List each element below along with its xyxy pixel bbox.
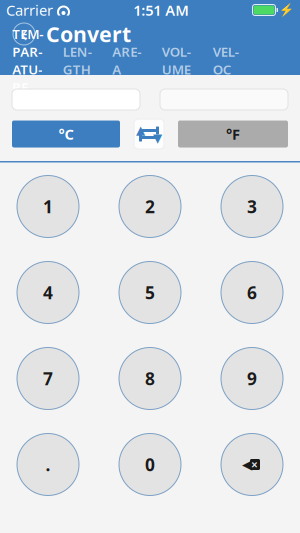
staticText: 0: [145, 453, 155, 476]
staticText: ◀: [242, 457, 252, 472]
staticText: °C: [58, 124, 73, 144]
staticText: ‹: [20, 18, 27, 48]
button[interactable]: VOLUME: [151, 48, 201, 75]
staticText: 5: [145, 281, 155, 304]
button[interactable]: Swap units: [134, 119, 164, 149]
staticText: 6: [247, 281, 257, 304]
button[interactable]: 4: [17, 261, 79, 323]
staticText: 8: [145, 367, 155, 390]
button[interactable]: Back: [12, 19, 36, 49]
button[interactable]: 0: [119, 433, 181, 495]
staticText: 3: [247, 195, 257, 218]
staticText: AREA: [112, 43, 141, 78]
button[interactable]: .: [17, 433, 79, 495]
button[interactable]: 2: [119, 175, 181, 237]
button[interactable]: °F: [178, 120, 288, 147]
staticText: ⚡: [279, 3, 294, 17]
staticText: 2: [145, 195, 155, 218]
button[interactable]: 8: [119, 347, 181, 409]
staticText: Carrier: [6, 0, 53, 20]
button[interactable]: 9: [221, 347, 283, 409]
staticText: LENGTH: [63, 43, 92, 78]
staticText: TEMPARATURE: [12, 25, 43, 96]
staticText: 9: [247, 367, 257, 390]
staticText: ▼: [153, 131, 162, 145]
staticText: ▲: [136, 123, 145, 137]
staticText: VOLUME: [162, 43, 191, 78]
button[interactable]: 5: [119, 261, 181, 323]
button[interactable]: LENGTH: [52, 48, 102, 75]
button[interactable]: °C: [12, 120, 120, 147]
staticText: 1:51 AM: [133, 0, 189, 20]
staticText: ×: [251, 456, 258, 472]
staticText: 4: [43, 281, 53, 304]
staticText: VELOC: [213, 43, 239, 78]
staticText: °F: [226, 124, 240, 144]
button[interactable]: 7: [17, 347, 79, 409]
staticText: Convert: [46, 20, 131, 48]
staticText: 7: [43, 367, 53, 390]
button[interactable]: TEMPARATURE: [3, 48, 52, 75]
button[interactable]: 1: [17, 175, 79, 237]
button[interactable]: VELOC: [201, 48, 250, 75]
staticText: .: [45, 453, 50, 476]
button[interactable]: Delete: [221, 433, 283, 495]
button[interactable]: 6: [221, 261, 283, 323]
staticText: 1: [43, 195, 53, 218]
button[interactable]: 3: [221, 175, 283, 237]
button[interactable]: AREA: [102, 48, 151, 75]
